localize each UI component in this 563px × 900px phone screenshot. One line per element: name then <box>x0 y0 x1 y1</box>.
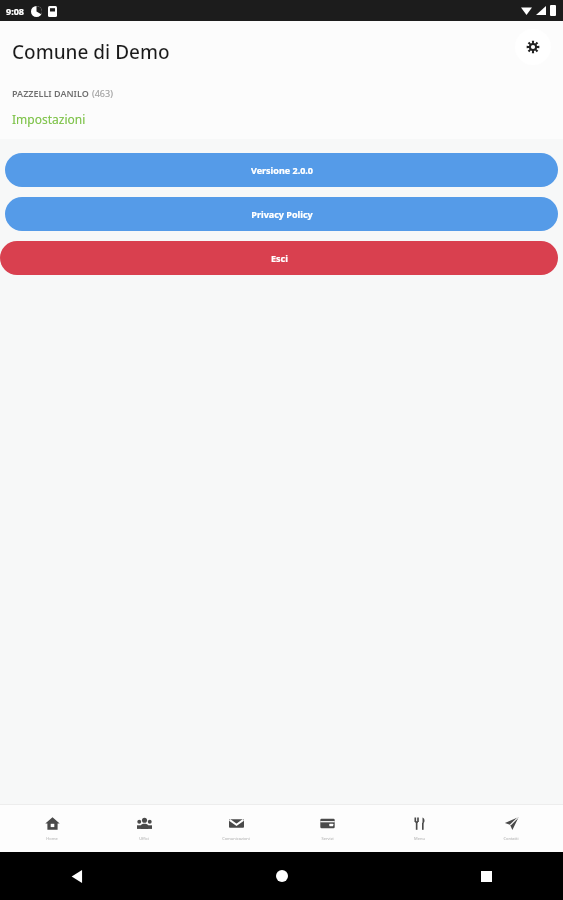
staticText: Contatti <box>503 836 519 841</box>
button[interactable]: Home <box>12 812 92 845</box>
staticText: Impostazioni <box>12 111 86 127</box>
button[interactable]: Back <box>60 859 94 893</box>
button[interactable]: Home <box>265 859 299 893</box>
button[interactable]: Recent apps <box>469 859 503 893</box>
button[interactable]: Privacy Policy <box>5 197 558 231</box>
button[interactable]: Impostazioni <box>12 111 86 127</box>
staticText: Privacy Policy <box>251 208 313 220</box>
button[interactable]: Contatti <box>471 812 551 845</box>
button[interactable]: Esci <box>0 241 558 275</box>
staticText: Comunicazioni <box>222 836 250 841</box>
staticText: Comune di Demo <box>12 39 170 65</box>
staticText: Home <box>46 836 58 841</box>
button[interactable]: Comunicazioni <box>196 812 276 845</box>
staticText: Menu <box>414 836 425 841</box>
staticText: Uffici <box>139 836 149 841</box>
staticText: (463) <box>92 87 113 99</box>
staticText: 9:08 <box>6 5 24 17</box>
button[interactable]: Menu <box>379 812 459 845</box>
staticText: Versione 2.0.0 <box>251 164 313 176</box>
button[interactable]: Servizi <box>287 812 367 845</box>
staticText: Servizi <box>321 836 334 841</box>
button[interactable]: Uffici <box>104 812 184 845</box>
button[interactable]: Versione 2.0.0 <box>5 153 558 187</box>
staticText: Esci <box>271 252 288 264</box>
button[interactable]: Settings <box>515 29 551 65</box>
staticText: PAZZELLI DANILO <box>12 87 92 99</box>
